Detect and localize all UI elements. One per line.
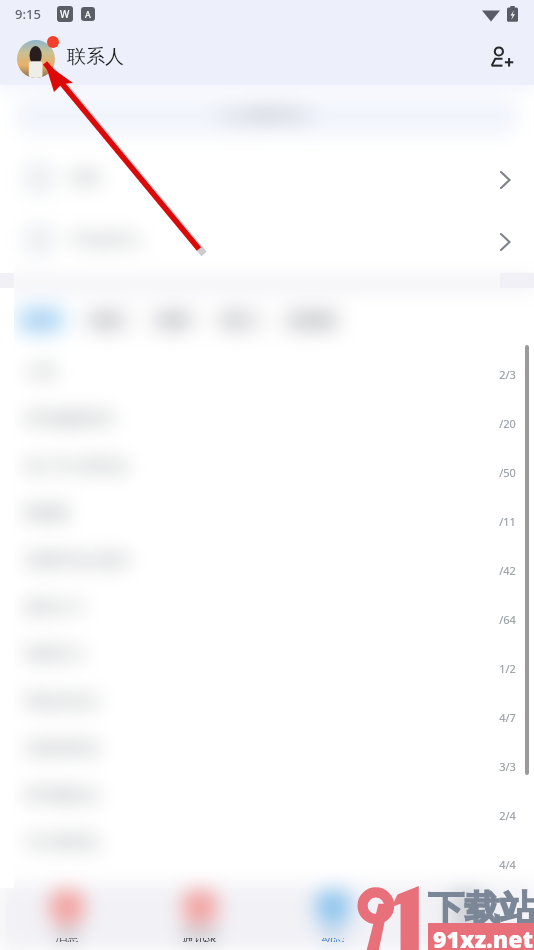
staticText: 3/3 <box>499 759 516 774</box>
staticText: 星标 <box>94 312 120 328</box>
button[interactable]: 全部 <box>14 305 68 335</box>
staticText: 搜索联系人 <box>243 107 313 125</box>
button[interactable]: 通讯录 <box>133 938 266 950</box>
button[interactable]: 吴彦祖同志 <box>0 725 534 772</box>
button[interactable]: /50 <box>494 448 520 497</box>
button[interactable]: 消息 <box>0 884 133 950</box>
button[interactable]: 我的 <box>400 884 534 950</box>
staticText: A <box>85 8 91 20</box>
staticText: 手机联系人 <box>70 231 145 250</box>
staticText: 李华丽丽同学 <box>25 410 115 429</box>
button[interactable]: 2/3 <box>494 350 520 399</box>
staticText: 我的 <box>455 927 479 942</box>
staticText: 同事 <box>160 312 186 328</box>
button[interactable]: /20 <box>494 399 520 448</box>
staticText: 下载站 <box>428 886 534 931</box>
button[interactable]: 孙悟空大 <box>0 631 534 678</box>
button[interactable]: 同事 <box>146 305 200 335</box>
staticText: 4/7 <box>499 710 516 725</box>
button[interactable]: 陈晓阳 <box>0 490 534 537</box>
staticText: 郑伊健先生 <box>25 786 100 805</box>
button[interactable]: 4/4 <box>494 840 520 889</box>
staticText: 刘德华先生您好 <box>25 551 130 570</box>
button[interactable]: 群聊 <box>0 147 534 209</box>
staticText: 通讯录 <box>182 938 218 942</box>
button[interactable]: 动态 <box>266 884 400 950</box>
staticText: 4/4 <box>499 857 516 872</box>
staticText: 冯小刚同志 <box>25 833 100 852</box>
button[interactable]: 朋友圈 <box>278 305 345 335</box>
button[interactable]: 我的 <box>400 938 534 950</box>
button[interactable]: 4/7 <box>494 693 520 742</box>
button[interactable]: Add contact <box>480 35 524 79</box>
staticText: 陈晓阳 <box>25 504 70 523</box>
staticText: /20 <box>499 416 516 431</box>
staticText: 9:15 <box>15 5 41 23</box>
staticText: 我的 <box>455 938 479 942</box>
staticText: /50 <box>499 465 516 480</box>
staticText: W <box>60 7 70 21</box>
staticText: 联系人 <box>67 45 124 69</box>
button[interactable]: /42 <box>494 546 520 595</box>
staticText: 朋友圈 <box>292 312 331 328</box>
button[interactable]: 冯小刚同志 <box>0 819 534 866</box>
button[interactable]: 张三丰大师兄长 <box>0 443 534 490</box>
button[interactable]: 李华丽丽同学 <box>0 396 534 443</box>
staticText: 孙悟空大 <box>25 645 85 664</box>
button[interactable]: 消息 <box>0 938 133 950</box>
staticText: 通讯录 <box>182 927 218 942</box>
button[interactable]: /11 <box>494 497 520 546</box>
staticText: 动态 <box>321 938 345 942</box>
button[interactable]: 动态 <box>266 938 400 950</box>
button[interactable]: 2/4 <box>494 791 520 840</box>
staticText: 91xz.net <box>433 923 533 950</box>
button[interactable]: 刘德华先生您好 <box>0 537 534 584</box>
staticText: /42 <box>499 563 516 578</box>
staticText: 全部 <box>28 312 54 328</box>
button[interactable]: 郑伊健先生 <box>0 772 534 819</box>
button[interactable]: 小明 <box>0 349 534 396</box>
staticText: 周杰伦先生 <box>25 692 100 711</box>
button[interactable]: 1/2 <box>494 644 520 693</box>
button[interactable]: 3/3 <box>494 742 520 791</box>
button[interactable]: 星标 <box>80 305 134 335</box>
staticText: 1/2 <box>499 661 516 676</box>
staticText: 动态 <box>321 927 345 942</box>
staticText: /11 <box>499 514 516 529</box>
button[interactable]: 周杰伦先生 <box>0 678 534 725</box>
staticText: 2/3 <box>499 367 516 382</box>
staticText: 2/4 <box>499 808 516 823</box>
staticText: 赵四小六 <box>25 598 85 617</box>
button[interactable]: 赵四小六 <box>0 584 534 631</box>
button[interactable]: 家人 <box>212 305 266 335</box>
staticText: 消息 <box>55 938 79 942</box>
button[interactable]: 通讯录 <box>133 884 266 950</box>
button[interactable]: /64 <box>494 595 520 644</box>
staticText: 消息 <box>55 927 79 942</box>
button[interactable]: 手机联系人 <box>0 209 534 271</box>
staticText: /64 <box>499 612 516 627</box>
staticText: 吴彦祖同志 <box>25 739 100 758</box>
button[interactable]: Profile <box>17 36 59 78</box>
